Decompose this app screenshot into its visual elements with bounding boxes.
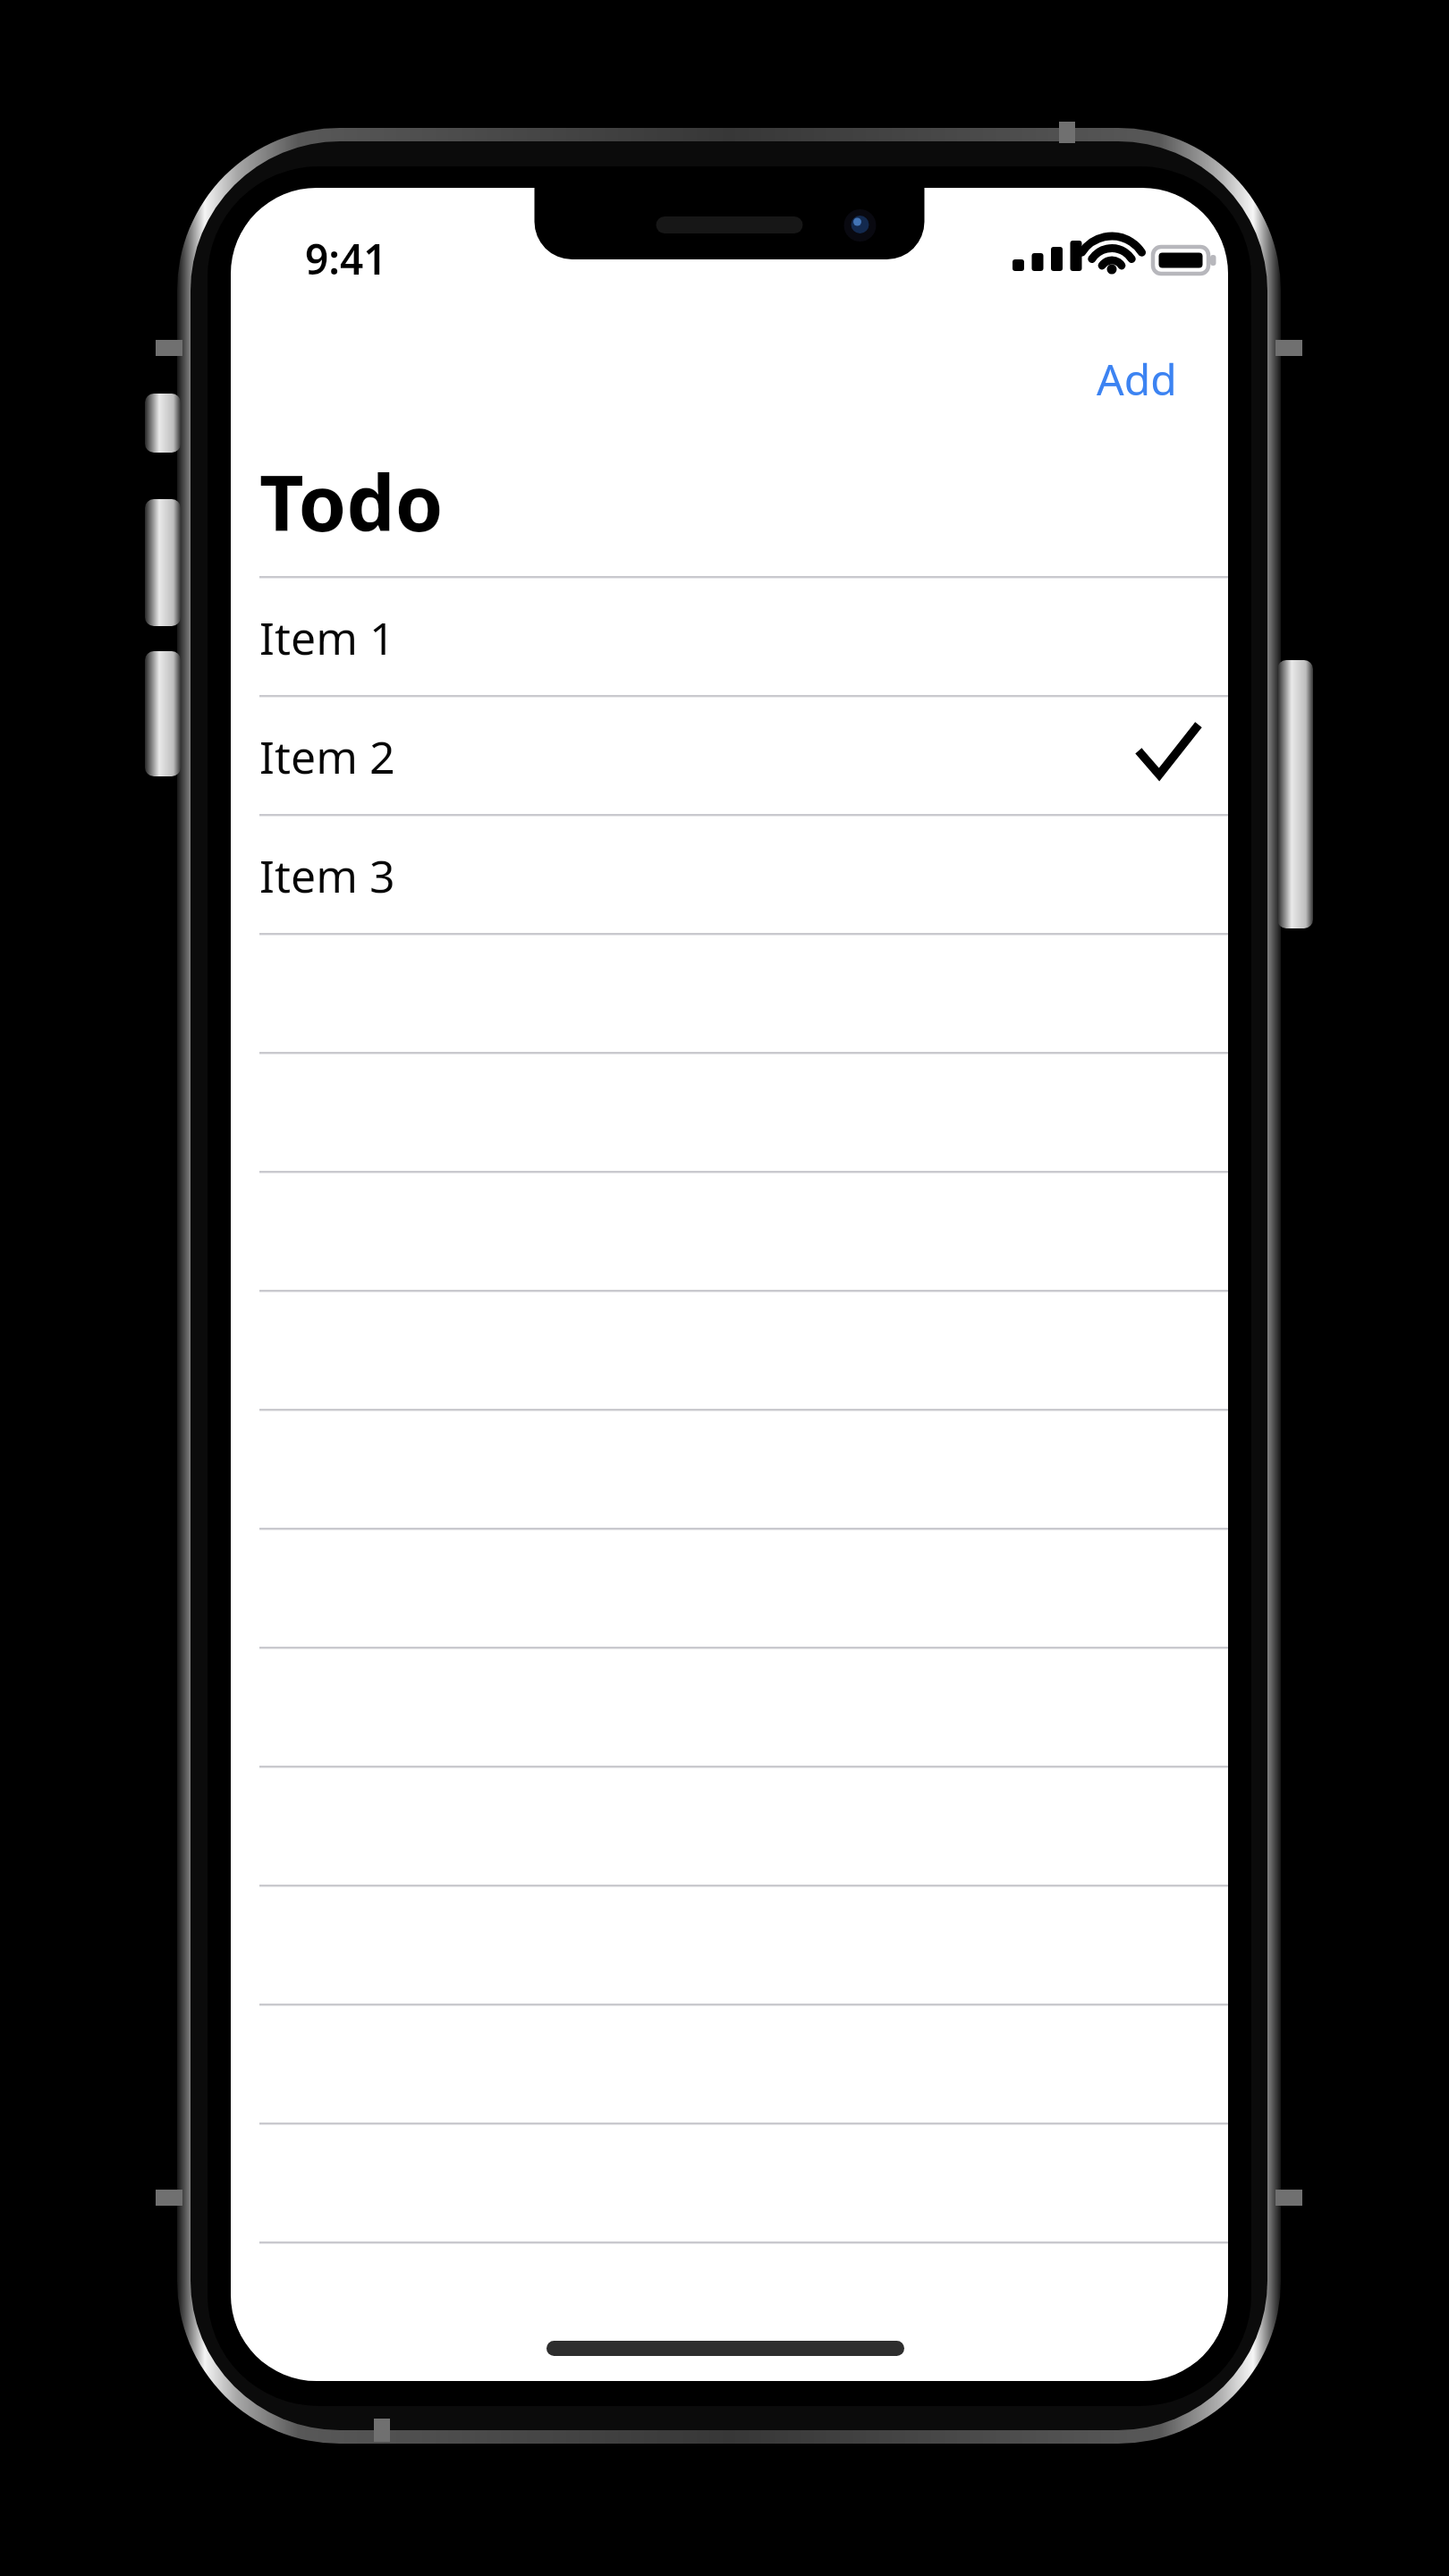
staticText: Todo bbox=[259, 449, 444, 554]
button[interactable]: Add bbox=[1079, 345, 1195, 411]
button[interactable]: Item 2 bbox=[259, 697, 1228, 816]
staticText: Add bbox=[1097, 350, 1177, 408]
staticText: Item 1 bbox=[259, 607, 395, 668]
button[interactable]: Item 3 bbox=[259, 816, 1228, 935]
staticText: Item 2 bbox=[259, 726, 395, 787]
staticText: 9:41 bbox=[305, 231, 387, 287]
staticText: Item 3 bbox=[259, 845, 395, 906]
button[interactable]: Item 1 bbox=[259, 578, 1228, 697]
